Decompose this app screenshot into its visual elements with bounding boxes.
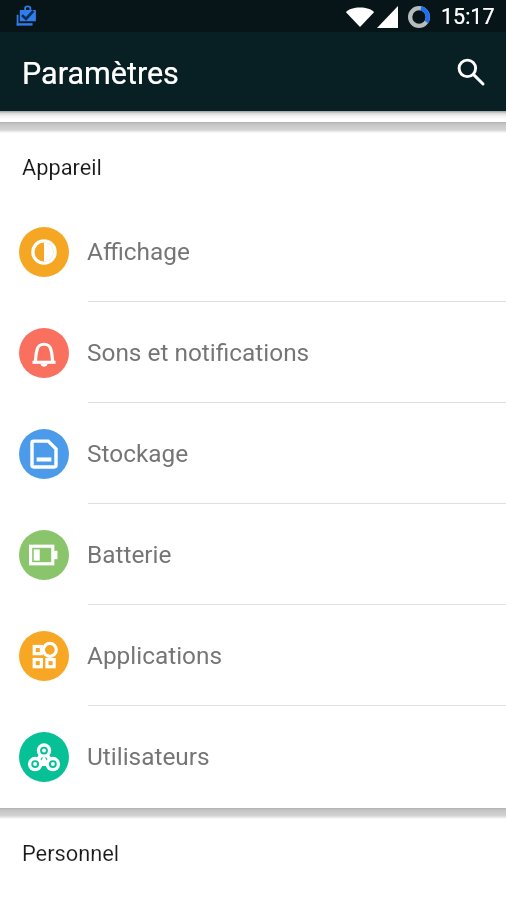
staticText: Sons et notifications xyxy=(87,338,310,367)
button[interactable]: Batterie xyxy=(0,504,506,605)
staticText: 15:17 xyxy=(441,4,495,29)
staticText: Stockage xyxy=(87,439,189,468)
button[interactable]: Stockage xyxy=(0,403,506,504)
button[interactable]: Utilisateurs xyxy=(0,706,506,807)
button[interactable]: Search xyxy=(447,48,495,96)
staticText: Appareil xyxy=(22,155,102,181)
staticText: Utilisateurs xyxy=(87,742,210,771)
staticText: Batterie xyxy=(87,540,172,569)
button[interactable]: Applications xyxy=(0,605,506,706)
staticText: Personnel xyxy=(22,841,120,867)
staticText: Affichage xyxy=(87,237,190,266)
staticText: Applications xyxy=(87,641,223,670)
staticText: Paramètres xyxy=(22,56,179,92)
button[interactable]: Affichage xyxy=(0,201,506,302)
button[interactable]: Sons et notifications xyxy=(0,302,506,403)
